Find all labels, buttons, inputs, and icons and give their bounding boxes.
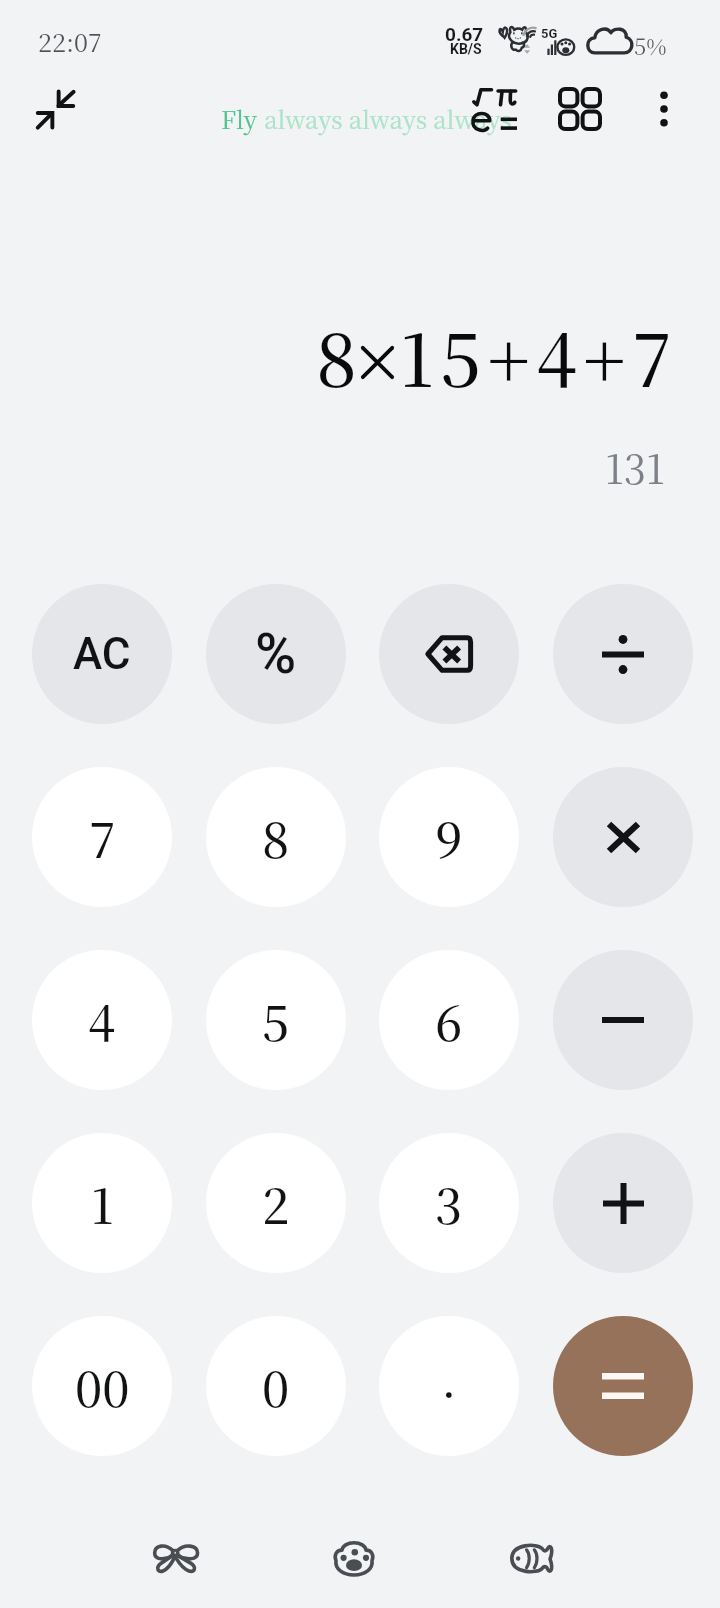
button[interactable]: Equals <box>553 1316 693 1456</box>
staticText: 7 <box>89 803 116 872</box>
button[interactable]: Scientific mode <box>462 76 528 142</box>
staticText: 131 <box>605 438 665 495</box>
staticText: 5G <box>541 26 558 41</box>
staticText: 4 <box>88 986 116 1055</box>
button[interactable]: . <box>379 1316 519 1456</box>
staticText: 8 <box>316 304 364 407</box>
button[interactable]: 9 <box>379 767 519 907</box>
button[interactable]: % <box>206 584 346 724</box>
button[interactable]: Unit converter <box>547 76 613 142</box>
button[interactable]: Multiply <box>553 767 693 907</box>
staticText: 3 <box>435 1169 463 1238</box>
staticText: % <box>255 621 297 687</box>
button[interactable]: Plus <box>553 1133 693 1273</box>
button[interactable]: Delete <box>379 584 519 724</box>
staticText: . <box>441 1342 457 1411</box>
staticText: AC <box>73 628 131 680</box>
staticText: 1 <box>91 1169 114 1238</box>
button[interactable]: Recent apps <box>496 1522 568 1594</box>
staticText: 2 <box>262 1169 290 1238</box>
staticText: 5% <box>634 30 667 62</box>
button[interactable]: 6 <box>379 950 519 1090</box>
staticText: 5 <box>262 986 290 1055</box>
staticText: KB/S <box>450 41 482 57</box>
button[interactable]: More options <box>631 76 697 142</box>
button[interactable]: Home <box>318 1522 390 1594</box>
button[interactable]: 3 <box>379 1133 519 1273</box>
button[interactable]: 5 <box>206 950 346 1090</box>
staticText: 9 <box>435 803 463 872</box>
button[interactable]: AC <box>32 584 172 724</box>
staticText: 22:07 <box>38 23 102 59</box>
staticText: 15+4+7 <box>400 304 679 407</box>
staticText: 8 <box>262 803 290 872</box>
staticText: Fly <box>221 101 258 135</box>
staticText: 0.67 <box>445 23 484 45</box>
staticText: 6 <box>435 986 463 1055</box>
button[interactable]: 1 <box>32 1133 172 1273</box>
button[interactable]: 7 <box>32 767 172 907</box>
staticText: 0 <box>262 1352 290 1421</box>
button[interactable]: Minus <box>553 950 693 1090</box>
button[interactable]: Collapse <box>22 76 88 142</box>
button[interactable]: 0 <box>206 1316 346 1456</box>
button[interactable]: 2 <box>206 1133 346 1273</box>
button[interactable]: 8 <box>206 767 346 907</box>
button[interactable]: Back <box>140 1522 212 1594</box>
button[interactable]: 00 <box>32 1316 172 1456</box>
staticText: 00 <box>75 1352 130 1421</box>
staticText: always always always <box>258 101 512 135</box>
button[interactable]: Divide <box>553 584 693 724</box>
button[interactable]: 4 <box>32 950 172 1090</box>
